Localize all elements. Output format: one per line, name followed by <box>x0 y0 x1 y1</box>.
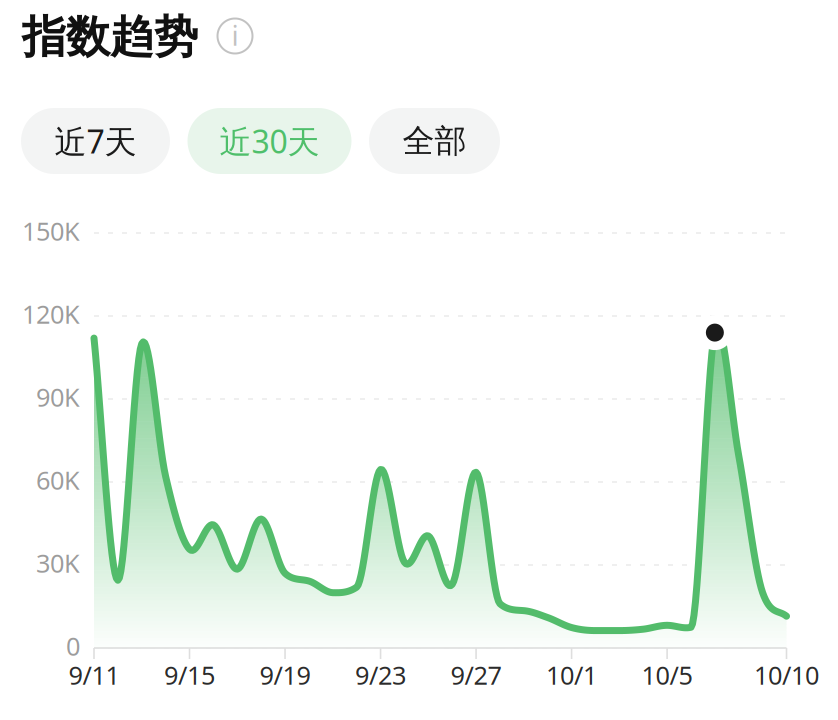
staticText: 9/11 <box>68 658 119 692</box>
button[interactable]: 近7天 <box>21 108 170 174</box>
staticText: 10/10 <box>754 658 819 692</box>
staticText: 指数趋势 <box>22 10 198 64</box>
staticText: 近7天 <box>54 120 136 162</box>
staticText: i <box>231 16 238 54</box>
staticText: 9/27 <box>451 658 502 692</box>
button[interactable]: About index trend <box>213 14 257 58</box>
staticText: 90K <box>36 380 80 414</box>
staticText: 9/23 <box>355 658 406 692</box>
staticText: 0 <box>66 629 80 663</box>
button[interactable]: 全部 <box>369 108 500 174</box>
button[interactable]: 近30天 <box>187 108 351 174</box>
staticText: 150K <box>22 214 80 248</box>
staticText: 近30天 <box>219 120 319 162</box>
staticText: 9/15 <box>164 658 215 692</box>
staticText: 120K <box>22 297 80 331</box>
staticText: 60K <box>36 463 80 497</box>
staticText: 10/5 <box>642 658 693 692</box>
staticText: 10/1 <box>546 658 597 692</box>
staticText: 9/19 <box>259 658 310 692</box>
staticText: 30K <box>36 546 80 580</box>
staticText: 全部 <box>402 121 466 161</box>
